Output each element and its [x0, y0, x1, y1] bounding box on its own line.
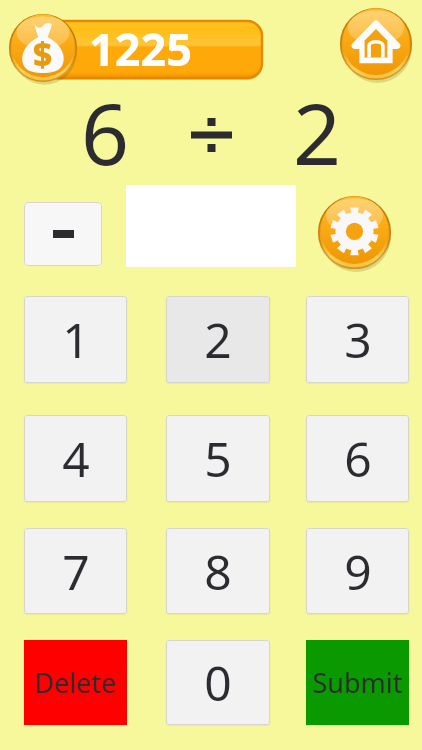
- button[interactable]: 2: [166, 296, 270, 383]
- staticText: 8: [204, 539, 232, 604]
- staticText: 9: [344, 539, 372, 604]
- button[interactable]: Home: [340, 8, 412, 80]
- button[interactable]: 7: [24, 528, 127, 614]
- staticText: Submit: [312, 664, 403, 701]
- staticText: 4: [62, 426, 90, 491]
- staticText: 1225: [89, 18, 192, 75]
- staticText: 1: [62, 307, 90, 372]
- staticText: 3: [344, 307, 372, 372]
- button[interactable]: 3: [306, 296, 409, 383]
- button[interactable]: 4: [24, 415, 127, 502]
- staticText: $: [33, 32, 53, 77]
- staticText: Delete: [34, 664, 117, 701]
- staticText: 5: [204, 426, 232, 491]
- button[interactable]: 0: [166, 640, 270, 725]
- staticText: 7: [62, 539, 90, 604]
- staticText: 6: [75, 75, 135, 175]
- staticText: 2: [287, 75, 347, 175]
- button[interactable]: Coins: 1225: [9, 14, 262, 82]
- staticText: 2: [204, 307, 232, 372]
- staticText: 6: [344, 426, 372, 491]
- button[interactable]: 9: [306, 528, 409, 614]
- button[interactable]: 8: [166, 528, 270, 614]
- button[interactable]: 6: [306, 415, 409, 502]
- button[interactable]: Submit: [306, 640, 409, 725]
- button[interactable]: Delete: [24, 640, 127, 725]
- button[interactable]: Minus sign: [24, 202, 102, 266]
- button[interactable]: Settings: [318, 196, 391, 269]
- button[interactable]: 5: [166, 415, 270, 502]
- staticText: 0: [204, 650, 232, 715]
- button[interactable]: 1: [24, 296, 127, 383]
